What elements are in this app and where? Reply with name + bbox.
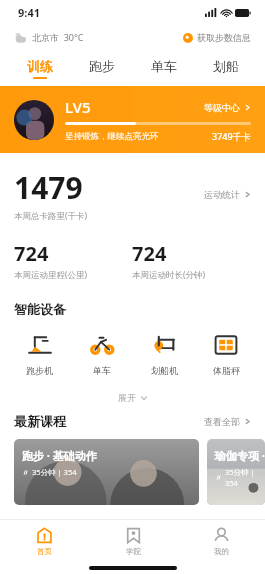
other: 首页 bbox=[36, 527, 53, 544]
button[interactable]: 运动统计 bbox=[204, 189, 251, 200]
staticText: 单车 bbox=[151, 58, 177, 74]
button[interactable]: 首页 bbox=[0, 520, 89, 562]
staticText: 9:41 bbox=[18, 5, 40, 20]
button[interactable]: 展开 bbox=[106, 388, 160, 407]
staticText: 跑步 · 基础动作 bbox=[22, 448, 97, 463]
staticText: 学院 bbox=[126, 547, 141, 556]
staticText: 智能设备 bbox=[14, 301, 66, 317]
button[interactable]: 跑步 · 基础动作 bbox=[14, 439, 199, 505]
staticText: 我的 bbox=[214, 547, 229, 556]
button[interactable]: 划船 bbox=[195, 50, 257, 86]
other: 学院 bbox=[125, 527, 142, 544]
button[interactable]: LV5 bbox=[0, 86, 265, 153]
button[interactable]: 跑步机 bbox=[8, 329, 71, 378]
staticText: 查看全部 bbox=[204, 416, 240, 427]
staticText: 724 bbox=[14, 240, 49, 267]
staticText: 获取步数信息 bbox=[197, 32, 251, 43]
staticText: 等级中心 bbox=[204, 102, 240, 113]
staticText: 35分钟 | 354 bbox=[32, 467, 77, 477]
staticText: 单车 bbox=[93, 365, 111, 376]
button[interactable]: 跑步 bbox=[71, 50, 133, 86]
staticText: 本周总卡路里(千卡) bbox=[14, 210, 88, 222]
staticText: 本周运动里程(公里) bbox=[14, 269, 88, 281]
staticText: 1479 bbox=[14, 167, 83, 208]
staticText: 跑步 bbox=[89, 58, 115, 74]
staticText: LV5 bbox=[65, 97, 91, 117]
staticText: 35分钟 | 354 bbox=[225, 467, 265, 488]
staticText: 瑜伽专项 · bbox=[215, 448, 265, 463]
staticText: 体脂秤 bbox=[213, 365, 240, 376]
button[interactable]: 体脂秤 bbox=[195, 329, 257, 378]
staticText: 3749千卡 bbox=[212, 130, 251, 142]
staticText: 运动统计 bbox=[204, 189, 240, 200]
staticText: 跑步机 bbox=[26, 365, 53, 376]
button[interactable]: 训练 bbox=[8, 50, 71, 86]
button[interactable]: 获取步数信息 bbox=[183, 32, 251, 43]
button[interactable]: 我的 bbox=[177, 520, 265, 562]
other: 我的 bbox=[213, 527, 230, 544]
staticText: 坚持锻炼，继续点亮光环 bbox=[65, 131, 159, 142]
staticText: 本周运动时长(分钟) bbox=[132, 269, 206, 281]
staticText: 北京市 30°C bbox=[32, 31, 84, 43]
staticText: 724 bbox=[132, 240, 167, 267]
staticText: 划船 bbox=[213, 58, 239, 74]
button[interactable]: 单车 bbox=[71, 329, 133, 378]
button[interactable]: 单车 bbox=[133, 50, 195, 86]
staticText: 首页 bbox=[37, 547, 52, 556]
button[interactable]: 查看全部 bbox=[204, 416, 251, 427]
staticText: 划船机 bbox=[151, 365, 178, 376]
button[interactable]: 学院 bbox=[89, 520, 177, 562]
button[interactable]: 瑜伽专项 · bbox=[207, 439, 265, 505]
staticText: 最新课程 bbox=[14, 413, 66, 429]
button[interactable]: 划船机 bbox=[133, 329, 195, 378]
staticText: 训练 bbox=[27, 58, 53, 74]
staticText: 展开 bbox=[118, 392, 136, 403]
